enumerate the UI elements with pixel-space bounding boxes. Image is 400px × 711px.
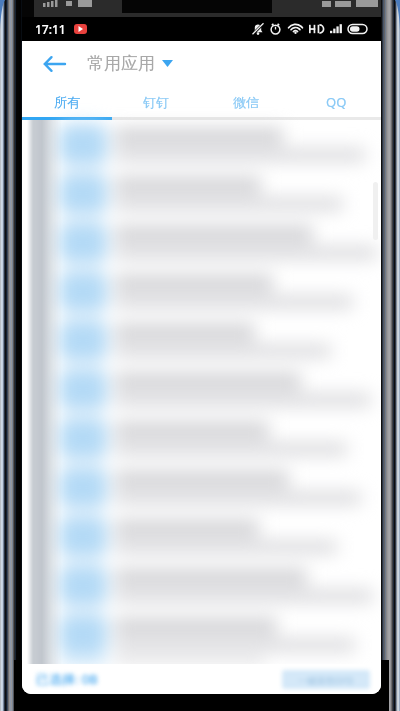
button[interactable]: 常用应用 (87, 53, 173, 74)
button[interactable] (22, 218, 381, 267)
button[interactable] (22, 120, 381, 169)
staticText: 钉钉 (143, 94, 169, 110)
button[interactable] (22, 414, 381, 463)
button[interactable] (22, 365, 381, 414)
staticText: 17:11 (35, 21, 66, 37)
button[interactable]: 一键清理(0/0) (282, 670, 370, 689)
button[interactable] (22, 463, 381, 512)
button[interactable]: 微信 (201, 86, 291, 117)
button[interactable] (22, 169, 381, 218)
button[interactable] (22, 659, 381, 664)
staticText: 所有 (54, 94, 80, 110)
staticText: 一键清理(0/0) (298, 674, 354, 686)
staticText: QQ (326, 93, 347, 111)
button[interactable] (22, 267, 381, 316)
button[interactable]: 所有 (22, 86, 111, 117)
button[interactable]: Back (22, 41, 85, 86)
button[interactable]: 钉钉 (111, 86, 201, 117)
button[interactable]: QQ (291, 86, 381, 117)
staticText: 微信 (233, 94, 259, 110)
button[interactable] (22, 316, 381, 365)
button[interactable] (22, 561, 381, 610)
staticText: 已选择: 0B (36, 670, 98, 688)
button[interactable] (22, 610, 381, 659)
button[interactable] (22, 512, 381, 561)
staticText: 常用应用 (87, 53, 155, 74)
